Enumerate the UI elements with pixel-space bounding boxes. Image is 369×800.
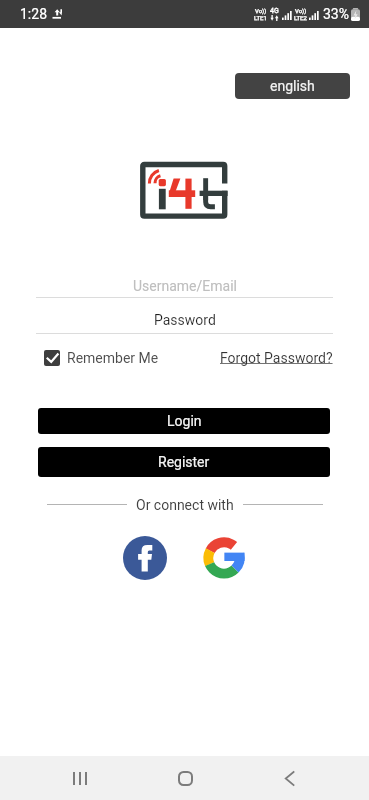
button[interactable]: Forgot Password?	[220, 350, 333, 366]
staticText: Vo))	[295, 7, 307, 14]
staticText: Register	[158, 454, 210, 470]
staticText: Login	[167, 413, 202, 429]
staticText: Remember Me	[67, 350, 159, 366]
staticText: 33%	[323, 6, 349, 22]
button[interactable]: Sign in with Google	[202, 536, 246, 580]
staticText: Password	[154, 312, 216, 328]
button[interactable]: Recent apps	[56, 756, 104, 800]
staticText: LTE1	[254, 14, 267, 21]
staticText: Or connect with	[136, 497, 234, 511]
button[interactable]: Home	[161, 756, 209, 800]
staticText: Username/Email	[133, 278, 237, 294]
button[interactable]: english	[235, 73, 350, 99]
staticText: Forgot Password?	[220, 350, 333, 366]
button[interactable]: Back	[265, 756, 313, 800]
staticText: Vo))	[255, 7, 267, 14]
staticText: 4G	[270, 7, 279, 15]
staticText: LTE2	[294, 14, 307, 21]
button[interactable]: Login	[38, 408, 330, 434]
button[interactable]: Register	[38, 447, 330, 477]
button[interactable]: Sign in with Facebook	[123, 536, 167, 580]
staticText: 1:28	[20, 6, 47, 22]
staticText: english	[270, 78, 315, 94]
button[interactable]: Remember Me	[36, 350, 159, 366]
